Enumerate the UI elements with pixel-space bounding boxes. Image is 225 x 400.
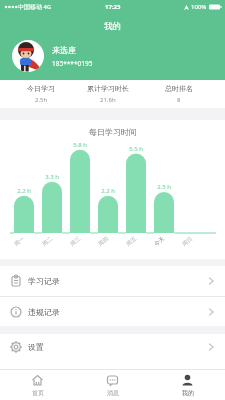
staticText: 8 [177, 96, 181, 104]
staticText: 今天 [153, 235, 166, 248]
staticText: 100% [191, 3, 207, 11]
button[interactable]: 今日学习 [0, 80, 82, 108]
staticText: 2.5 h [150, 183, 178, 191]
staticText: 17:23 [105, 3, 121, 11]
button[interactable]: 总时排名 [133, 80, 225, 108]
button[interactable]: 消息 [75, 370, 150, 400]
staticText: 3.3 h [38, 173, 66, 181]
button[interactable]: 首页 [0, 370, 75, 400]
staticText: 周四 [97, 235, 110, 248]
staticText: 2.5h [35, 96, 48, 104]
button[interactable]: 设置 [0, 334, 225, 360]
button[interactable]: 累计学习时长 [82, 80, 133, 108]
staticText: 累计学习时长 [87, 84, 129, 93]
staticText: 周日 [181, 235, 194, 248]
staticText: 21.6h [100, 96, 116, 104]
staticText: 周五 [125, 235, 138, 248]
staticText: 周三 [69, 235, 82, 248]
staticText: 每日学习时间 [89, 127, 137, 137]
button[interactable]: 学习记录 [0, 266, 225, 296]
staticText: 学习记录 [28, 276, 60, 286]
button[interactable]: 违规记录 [0, 297, 225, 326]
staticText: 中国移动 4G [18, 3, 52, 11]
staticText: 违规记录 [28, 307, 60, 317]
staticText: 周二 [41, 235, 54, 248]
staticText: 我的 [182, 389, 194, 397]
staticText: 设置 [28, 342, 44, 352]
staticText: 185****0195 [52, 59, 93, 68]
staticText: 来选座 [52, 45, 76, 55]
staticText: 首页 [32, 389, 44, 397]
staticText: 我的 [104, 21, 121, 32]
button[interactable]: 来选座 [12, 40, 93, 72]
button[interactable]: 我的 [150, 370, 225, 400]
staticText: 消息 [107, 389, 119, 397]
staticText: 周一 [13, 235, 26, 248]
staticText: 总时排名 [165, 84, 193, 93]
staticText: 今日学习 [27, 84, 55, 93]
staticText: 5.5 h [122, 145, 150, 153]
staticText: 2.2 h [94, 187, 122, 195]
staticText: 5.8 h [66, 141, 94, 149]
staticText: 2.2 h [10, 187, 38, 195]
